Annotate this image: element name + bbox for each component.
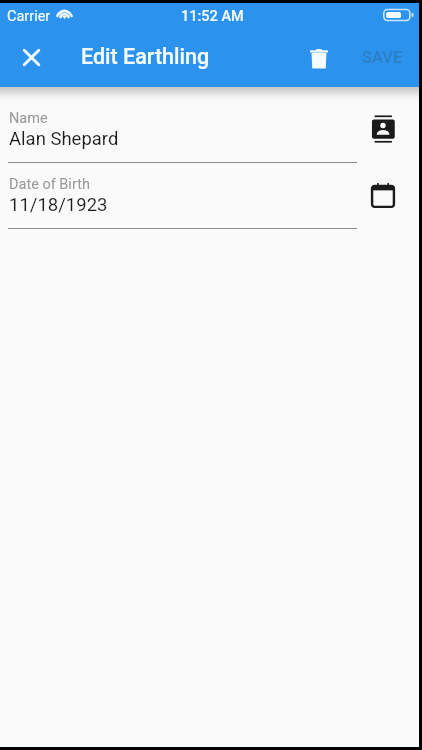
button[interactable]: SAVE (350, 36, 415, 84)
button[interactable]: Date of Birth (8, 176, 358, 232)
staticText: Name (9, 110, 48, 127)
staticText: SAVE (362, 48, 403, 67)
button[interactable]: Delete (295, 36, 343, 84)
staticText: 11/18/1923 (9, 194, 108, 216)
staticText: Carrier (7, 8, 51, 25)
button[interactable]: Close (3, 32, 59, 88)
button[interactable]: Pick contact (359, 110, 407, 158)
staticText: 11:52 AM (181, 8, 244, 25)
staticText: Edit Earthling (81, 44, 210, 69)
staticText: Date of Birth (9, 176, 90, 193)
button[interactable]: Pick date (359, 176, 407, 224)
staticText: Alan Shepard (9, 128, 119, 150)
button[interactable]: Name (8, 110, 358, 166)
